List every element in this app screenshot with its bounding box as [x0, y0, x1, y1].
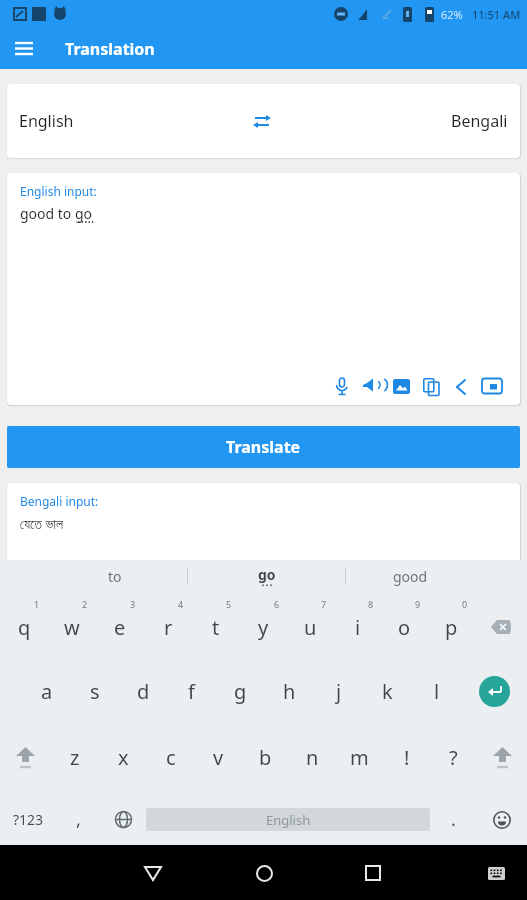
button[interactable] — [0, 724, 51, 790]
button[interactable]: t — [192, 596, 240, 658]
button[interactable]: go — [188, 560, 345, 592]
staticText: v — [213, 744, 224, 771]
button[interactable] — [461, 658, 527, 724]
staticText: d — [137, 678, 150, 705]
button[interactable]: to — [42, 560, 187, 592]
staticText: p — [445, 614, 458, 641]
button[interactable]: ? — [430, 724, 477, 790]
button[interactable]: z — [51, 724, 99, 790]
staticText: Translate — [226, 436, 301, 458]
button[interactable]: j — [314, 658, 363, 724]
button[interactable]: f — [167, 658, 216, 724]
button[interactable] — [327, 374, 357, 400]
staticText: g — [234, 678, 247, 705]
button[interactable] — [135, 855, 171, 891]
button[interactable]: o — [381, 596, 428, 658]
button[interactable]: y — [240, 596, 287, 658]
staticText: 5 — [226, 598, 232, 610]
staticText: good — [393, 567, 428, 586]
button[interactable]: r — [144, 596, 192, 658]
staticText: x — [118, 744, 129, 771]
staticText: 1 — [34, 598, 40, 610]
button[interactable]: Bengali — [451, 110, 508, 132]
staticText: , — [76, 807, 81, 832]
button[interactable]: x — [99, 724, 147, 790]
button[interactable]: Translate — [7, 426, 520, 468]
staticText: q — [18, 614, 31, 641]
staticText: e — [114, 614, 126, 641]
button[interactable]: English — [19, 110, 74, 132]
staticText: যেতে ভাল — [20, 514, 64, 533]
button[interactable]: s — [71, 658, 119, 724]
staticText: Translation — [65, 38, 155, 60]
button[interactable]: ! — [383, 724, 430, 790]
button[interactable]: e — [96, 596, 144, 658]
button[interactable] — [357, 374, 387, 400]
staticText: 62% — [441, 7, 463, 22]
staticText: to — [108, 567, 122, 586]
button[interactable]: good — [346, 560, 475, 592]
staticText: English — [266, 811, 311, 829]
staticText: t — [212, 614, 220, 641]
staticText: o — [398, 614, 411, 641]
staticText: r — [164, 614, 173, 641]
button[interactable]: h — [265, 658, 314, 724]
staticText: . — [451, 807, 456, 832]
button[interactable] — [476, 794, 527, 845]
button[interactable]: ?123 — [0, 794, 57, 845]
button[interactable] — [247, 106, 277, 136]
staticText: 2 — [82, 598, 88, 610]
button[interactable]: l — [412, 658, 461, 724]
staticText: c — [166, 744, 176, 771]
button[interactable]: v — [195, 724, 242, 790]
button[interactable]: , — [57, 794, 100, 845]
button[interactable] — [477, 374, 507, 400]
staticText: a — [41, 678, 53, 705]
button[interactable] — [355, 855, 391, 891]
button[interactable] — [0, 28, 48, 69]
staticText: h — [283, 678, 296, 705]
button[interactable]: c — [147, 724, 195, 790]
button[interactable] — [100, 794, 146, 845]
button[interactable] — [475, 596, 527, 658]
staticText: z — [70, 744, 80, 771]
button[interactable]: . — [430, 794, 476, 845]
staticText: 3 — [130, 598, 136, 610]
staticText: ? — [449, 744, 458, 771]
button[interactable]: g — [216, 658, 265, 724]
staticText: 9 — [415, 598, 421, 610]
button[interactable]: a — [23, 658, 71, 724]
button[interactable]: d — [119, 658, 167, 724]
staticText: go — [258, 565, 276, 584]
staticText: ?123 — [13, 810, 44, 829]
button[interactable] — [481, 858, 511, 888]
button[interactable]: b — [242, 724, 289, 790]
button[interactable]: q — [0, 596, 48, 658]
staticText: 4 — [178, 598, 184, 610]
staticText: b — [259, 744, 272, 771]
staticText: s — [90, 678, 100, 705]
button[interactable] — [387, 374, 417, 400]
button[interactable]: p — [428, 596, 475, 658]
staticText: l — [434, 678, 440, 705]
staticText: f — [188, 678, 195, 705]
staticText: 7 — [321, 598, 327, 610]
staticText: 0 — [462, 598, 468, 610]
button[interactable]: w — [48, 596, 96, 658]
button[interactable] — [417, 374, 447, 400]
button[interactable]: u — [287, 596, 334, 658]
staticText: 11:51 AM — [472, 7, 521, 22]
staticText: good to go — [20, 204, 93, 223]
button[interactable]: n — [289, 724, 336, 790]
button[interactable] — [477, 724, 527, 790]
button[interactable]: k — [363, 658, 412, 724]
button[interactable] — [447, 374, 477, 400]
staticText: 8 — [368, 598, 374, 610]
staticText: English input: — [20, 183, 97, 199]
button[interactable]: i — [334, 596, 381, 658]
button[interactable]: m — [336, 724, 383, 790]
staticText: k — [382, 678, 393, 705]
button[interactable]: English — [146, 808, 430, 831]
staticText: u — [304, 614, 317, 641]
button[interactable] — [246, 855, 282, 891]
